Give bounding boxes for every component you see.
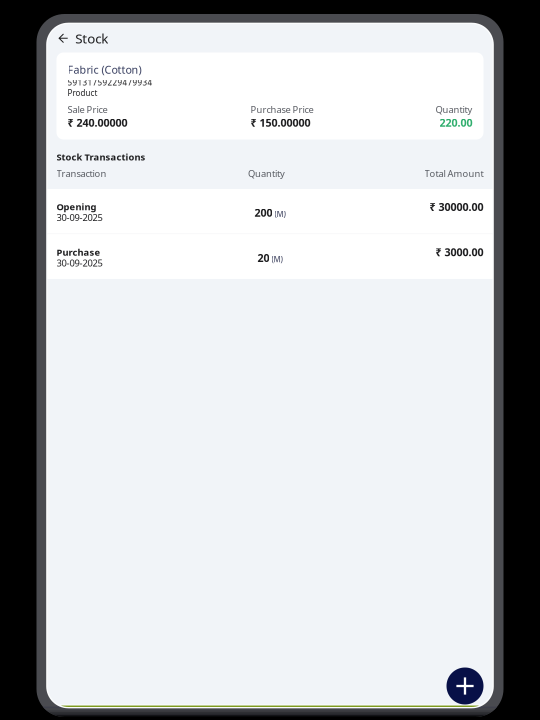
staticText: Product <box>67 88 97 98</box>
button[interactable]: Opening <box>47 189 492 233</box>
staticText: Stock Transactions <box>56 151 145 163</box>
staticText: 59131759229479934 <box>67 77 152 88</box>
staticText: Quantity <box>248 167 285 180</box>
staticText: Transaction <box>56 167 106 180</box>
staticText: 30-09-2025 <box>56 257 102 269</box>
button[interactable]: Purchase <box>47 234 492 279</box>
button[interactable]: Back <box>47 24 75 52</box>
staticText: 220.00 <box>439 115 472 130</box>
staticText: Fabric (Cotton) <box>67 62 141 77</box>
staticText: ₹ 30000.00 <box>429 200 483 214</box>
staticText: 200 <box>254 205 272 220</box>
staticText: Purchase <box>56 246 100 258</box>
staticText: Sale Price <box>67 103 107 116</box>
staticText: Opening <box>56 201 96 213</box>
staticText: ₹ 150.00000 <box>250 115 310 130</box>
staticText: Quantity <box>435 103 472 116</box>
staticText: 30-09-2025 <box>56 211 102 224</box>
staticText: ₹ 3000.00 <box>435 245 483 259</box>
staticText: Purchase Price <box>250 103 313 116</box>
staticText: 20 <box>257 251 269 265</box>
button[interactable]: Add <box>446 667 483 704</box>
staticText: Stock <box>75 29 108 47</box>
staticText: (M) <box>272 254 283 264</box>
staticText: Total Amount <box>424 167 483 180</box>
staticText: ₹ 240.00000 <box>67 115 127 130</box>
staticText: (M) <box>275 208 286 219</box>
